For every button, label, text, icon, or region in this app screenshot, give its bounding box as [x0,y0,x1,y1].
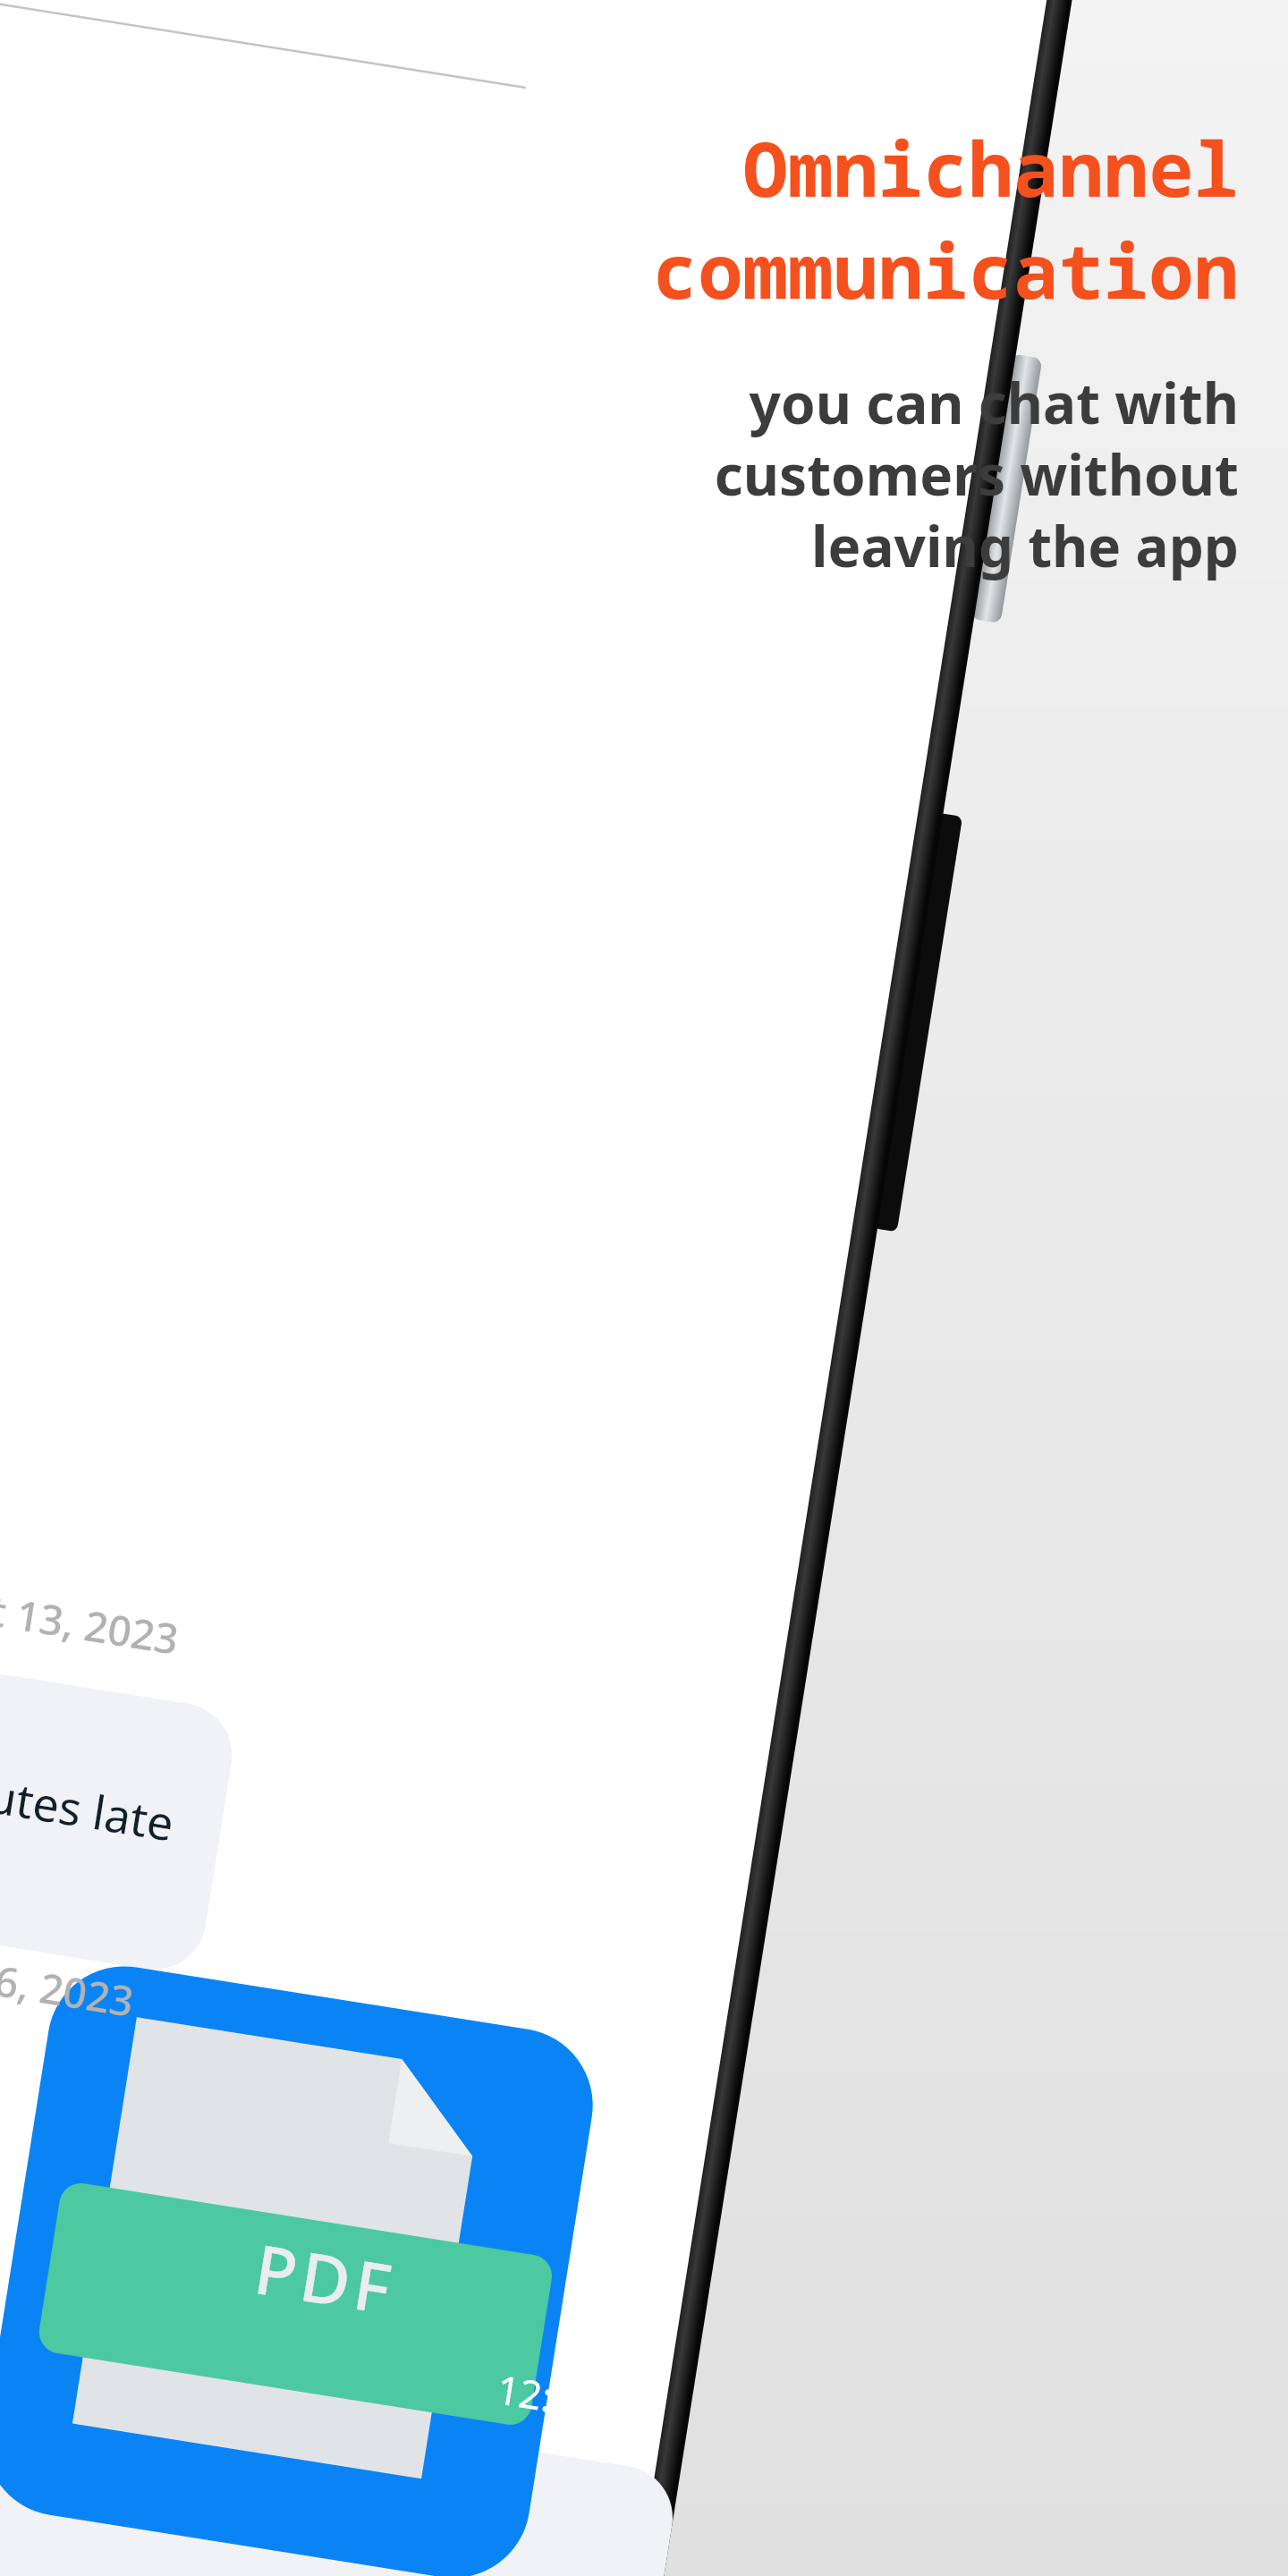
staticText: 12:26 PM [493,2362,670,2441]
staticText: communication [652,218,1239,320]
staticText: I will be 5 minutes late [0,1715,179,1855]
staticText: Omnichannel [742,116,1239,218]
staticText: Oct 16, 2023 [0,1936,138,2029]
staticText: Oct 13, 2023 [0,1574,183,1667]
button[interactable]: Omnichannel [652,116,1239,583]
button[interactable]: I will be 5 minutes late [0,1715,179,1855]
staticText: PDF [248,2221,403,2335]
button[interactable]: PDF attachment [248,2221,403,2335]
staticText: you can chat with customers without leav… [714,365,1239,583]
